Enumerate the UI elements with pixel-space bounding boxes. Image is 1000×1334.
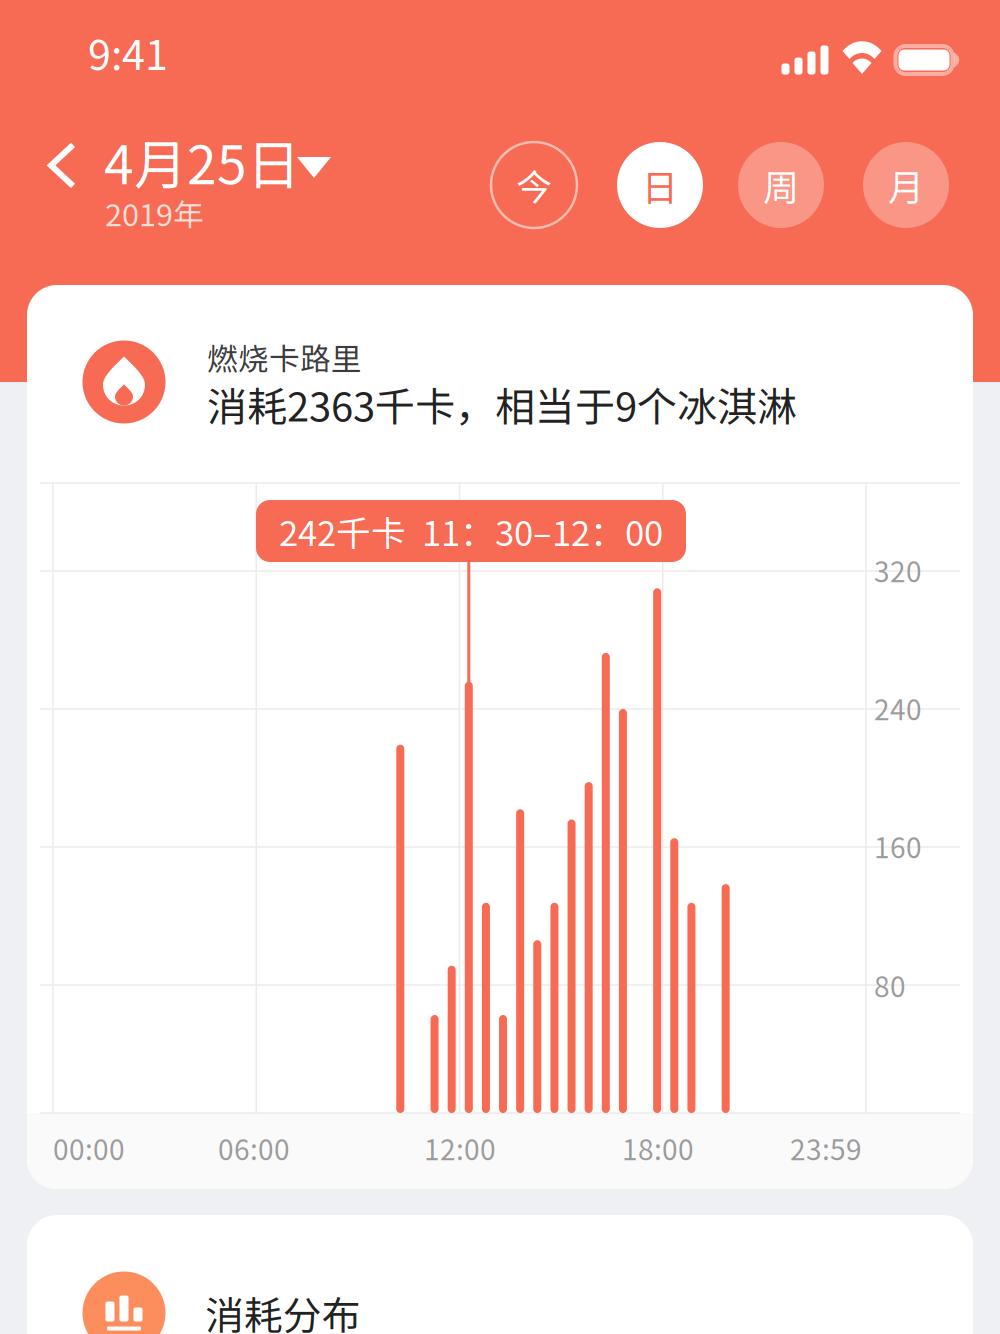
- staticText: 日: [642, 159, 678, 211]
- staticText: 06:00: [218, 1128, 290, 1168]
- button[interactable]: 今: [491, 142, 577, 228]
- staticText: 242千卡 11：30–12：00: [279, 506, 663, 556]
- staticText: 00:00: [53, 1128, 125, 1168]
- staticText: 消耗分布: [205, 1285, 361, 1334]
- button[interactable]: 日: [617, 142, 703, 228]
- staticText: 12:00: [424, 1128, 496, 1168]
- staticText: 燃烧卡路里: [207, 335, 362, 379]
- staticText: 320: [874, 550, 922, 590]
- staticText: 18:00: [622, 1128, 694, 1168]
- staticText: 4月25日: [104, 122, 300, 200]
- staticText: 今: [516, 159, 552, 211]
- staticText: 80: [874, 965, 906, 1005]
- button[interactable]: 月: [863, 142, 949, 228]
- button[interactable]: 4月25日: [104, 121, 404, 201]
- staticText: 周: [763, 159, 799, 211]
- button[interactable]: Back: [33, 127, 91, 204]
- button[interactable]: 周: [738, 142, 824, 228]
- staticText: 2019年: [105, 191, 204, 235]
- staticText: 160: [874, 826, 922, 866]
- staticText: 23:59: [790, 1128, 862, 1168]
- staticText: 消耗2363千卡，相当于9个冰淇淋: [207, 375, 797, 433]
- staticText: 240: [874, 688, 922, 728]
- staticText: 9:41: [88, 22, 168, 82]
- staticText: 月: [888, 159, 924, 211]
